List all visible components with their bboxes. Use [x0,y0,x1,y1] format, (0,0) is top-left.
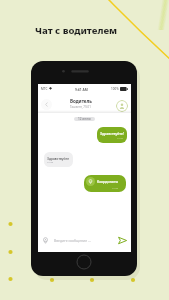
staticText: Чат с водителем [35,24,118,37]
staticText: 17:34 [117,136,124,139]
staticText: 9:41 AM [75,87,88,91]
staticText: 17:35 [47,160,54,163]
staticText: МТС [41,87,48,91]
staticText: Водитель [70,98,92,104]
staticText: 100% [111,87,119,91]
button[interactable]: Здравствуйте! [97,127,127,143]
button[interactable]: Back [41,99,52,110]
button[interactable]: Attach location [41,236,50,245]
staticText: Ташкент, 79-01 [70,105,91,109]
staticText: Введите сообщение ... [54,238,91,243]
staticText: Координаты [97,179,119,184]
button[interactable]: Здравствуйте [44,152,73,167]
staticText: 12 июня [78,117,91,121]
button[interactable]: Координаты [84,175,126,192]
staticText: 17:35 [112,186,119,189]
button[interactable]: Send message [117,235,128,246]
staticText: Здравствуйте [47,156,70,160]
button[interactable]: Driver profile [116,100,128,112]
staticText: Здравствуйте! [100,131,124,136]
